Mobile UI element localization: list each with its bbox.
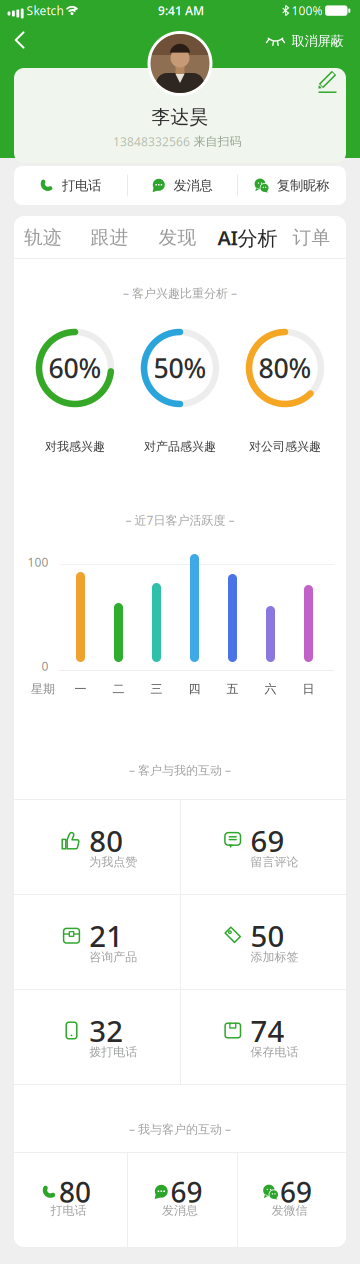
staticText: 添加标签	[251, 950, 299, 964]
staticText: 三	[150, 682, 162, 696]
button[interactable]: Edit	[313, 65, 343, 95]
staticText: Sketch	[26, 2, 63, 18]
button[interactable]: 74	[180, 989, 346, 1084]
button[interactable]: Back	[1, 21, 39, 59]
button[interactable]: 32	[14, 989, 180, 1084]
staticText: 发现	[158, 226, 196, 249]
staticText: 80	[59, 1173, 91, 1211]
staticText: 0	[41, 658, 48, 674]
staticText: 对我感兴趣	[45, 439, 105, 454]
staticText: 留言评论	[251, 855, 299, 869]
button[interactable]: 21	[14, 894, 180, 989]
button[interactable]: 订单	[280, 216, 342, 258]
staticText: 100	[27, 554, 48, 570]
staticText: 打电话	[62, 177, 101, 194]
staticText: 发消息	[162, 1203, 198, 1218]
staticText: 80	[89, 821, 123, 860]
staticText: – 近7日客户活跃度 –	[125, 512, 234, 528]
button[interactable]: 50	[180, 894, 346, 989]
staticText: 9:41 AM	[158, 2, 204, 18]
button[interactable]: 69	[237, 1152, 345, 1248]
staticText: 69	[280, 1173, 312, 1211]
staticText: 50%	[153, 350, 206, 386]
staticText: – 客户与我的互动 –	[129, 762, 231, 778]
staticText: 跟进	[90, 226, 128, 249]
button[interactable]: AI分析	[216, 216, 278, 258]
button[interactable]: 打电话	[16, 166, 124, 205]
button[interactable]: 发消息	[128, 166, 236, 205]
button[interactable]: 69	[180, 799, 346, 894]
staticText: 13848332566	[113, 133, 190, 149]
staticText: 五	[226, 682, 238, 696]
staticText: 60%	[48, 350, 101, 386]
staticText: 咨询产品	[89, 950, 137, 964]
staticText: 69	[170, 1173, 202, 1211]
staticText: 一	[74, 682, 86, 696]
staticText: 保存电话	[251, 1045, 299, 1059]
staticText: – 我与客户的互动 –	[129, 1121, 231, 1137]
staticText: 星期	[31, 682, 55, 696]
staticText: 来自扫码	[193, 134, 241, 149]
staticText: 订单	[292, 226, 330, 249]
button[interactable]: 发现	[146, 216, 208, 258]
staticText: 74	[251, 1011, 285, 1050]
staticText: 发微信	[271, 1203, 307, 1218]
staticText: 50	[251, 916, 285, 955]
staticText: AI分析	[217, 224, 277, 251]
staticText: 轨迹	[24, 226, 62, 249]
staticText: 复制昵称	[277, 177, 329, 194]
staticText: 四	[188, 682, 200, 696]
staticText: 李达昊	[151, 105, 208, 128]
button[interactable]: 80	[16, 1152, 124, 1248]
staticText: 100%	[291, 2, 322, 18]
button[interactable]: 轨迹	[12, 216, 74, 258]
staticText: 日	[302, 682, 314, 696]
staticText: 二	[112, 682, 124, 696]
button[interactable]: 80	[14, 799, 180, 894]
button[interactable]: 复制昵称	[237, 166, 345, 205]
staticText: – 客户兴趣比重分析 –	[123, 285, 237, 301]
staticText: 发消息	[173, 177, 212, 194]
staticText: 取消屏蔽	[291, 33, 343, 49]
staticText: 69	[251, 821, 285, 860]
button[interactable]: 69	[128, 1152, 236, 1248]
staticText: 为我点赞	[89, 855, 137, 869]
staticText: 32	[89, 1011, 123, 1050]
button[interactable]: 跟进	[78, 216, 140, 258]
staticText: 拨打电话	[89, 1045, 137, 1059]
staticText: 六	[264, 682, 276, 696]
staticText: 对产品感兴趣	[144, 439, 216, 454]
staticText: 打电话	[50, 1203, 86, 1218]
button[interactable]: 取消屏蔽	[266, 22, 343, 60]
staticText: 80%	[258, 350, 311, 386]
staticText: 21	[89, 916, 123, 955]
staticText: 对公司感兴趣	[249, 439, 321, 454]
